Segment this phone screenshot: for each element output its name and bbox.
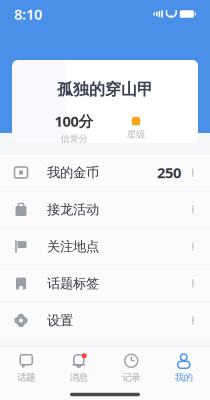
button[interactable]: 话题 bbox=[0, 347, 52, 389]
button[interactable]: 我的金币 bbox=[0, 155, 210, 190]
staticText: 100分 bbox=[54, 111, 93, 131]
button[interactable]: 消息 bbox=[52, 347, 105, 389]
staticText: 我的金币 bbox=[47, 164, 99, 181]
staticText: 消息 bbox=[70, 372, 88, 383]
button[interactable]: 设置 bbox=[0, 303, 210, 338]
staticText: 8:10 bbox=[14, 4, 42, 24]
staticText: 关注地点 bbox=[47, 238, 99, 255]
staticText: 星级 bbox=[127, 129, 145, 140]
staticText: 信誉分 bbox=[60, 133, 87, 144]
button[interactable]: 接龙活动 bbox=[0, 192, 210, 227]
button[interactable]: 我的 bbox=[157, 347, 210, 389]
button[interactable]: 记录 bbox=[105, 347, 157, 389]
staticText: 孤独的穿山甲 bbox=[57, 80, 153, 99]
staticText: 设置 bbox=[47, 312, 73, 329]
staticText: 话题 bbox=[17, 372, 35, 383]
staticText: 250 bbox=[157, 163, 181, 182]
button[interactable]: 关注地点 bbox=[0, 229, 210, 264]
button[interactable]: 话题标签 bbox=[0, 266, 210, 301]
staticText: 接龙活动 bbox=[47, 201, 99, 218]
staticText: 记录 bbox=[122, 372, 140, 383]
staticText: 我的 bbox=[175, 372, 193, 383]
staticText: 话题标签 bbox=[47, 275, 99, 292]
